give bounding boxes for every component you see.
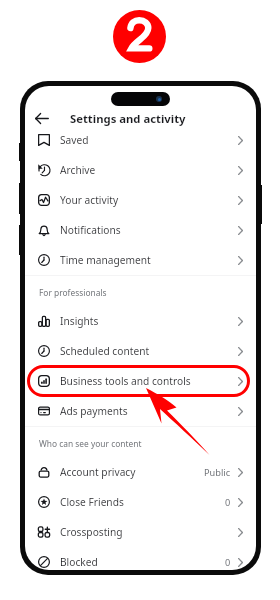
staticText: For professionals: [39, 287, 107, 298]
staticText: Public: [204, 466, 231, 479]
staticText: Crossposting: [60, 525, 123, 539]
button[interactable]: Time management: [25, 245, 256, 275]
staticText: Account privacy: [60, 465, 136, 479]
staticText: Close Friends: [60, 495, 124, 509]
staticText: Your activity: [60, 193, 119, 207]
staticText: Business tools and controls: [60, 374, 191, 388]
staticText: Who can see your content: [39, 438, 142, 449]
button[interactable]: Insights: [25, 306, 256, 336]
button[interactable]: Scheduled content: [25, 336, 256, 366]
staticText: 0: [225, 556, 231, 569]
staticText: 0: [225, 496, 231, 509]
staticText: Archive: [60, 163, 96, 177]
button[interactable]: Business tools and controls: [25, 366, 256, 396]
staticText: Insights: [60, 314, 99, 328]
button[interactable]: Crossposting: [25, 517, 256, 547]
staticText: Settings and activity: [70, 111, 186, 126]
button[interactable]: Account privacy: [25, 457, 256, 487]
button[interactable]: Blocked: [25, 547, 256, 570]
button[interactable]: Back: [31, 108, 53, 128]
staticText: Blocked: [60, 555, 98, 569]
staticText: Ads payments: [60, 404, 128, 418]
staticText: Notifications: [60, 223, 121, 237]
button[interactable]: Your activity: [25, 185, 256, 215]
button[interactable]: Archive: [25, 155, 256, 185]
button[interactable]: Ads payments: [25, 396, 256, 426]
button[interactable]: Saved: [25, 125, 256, 155]
button[interactable]: Notifications: [25, 215, 256, 245]
button[interactable]: Close Friends: [25, 487, 256, 517]
staticText: Scheduled content: [60, 344, 150, 358]
staticText: Saved: [60, 133, 89, 147]
staticText: Time management: [60, 253, 151, 267]
